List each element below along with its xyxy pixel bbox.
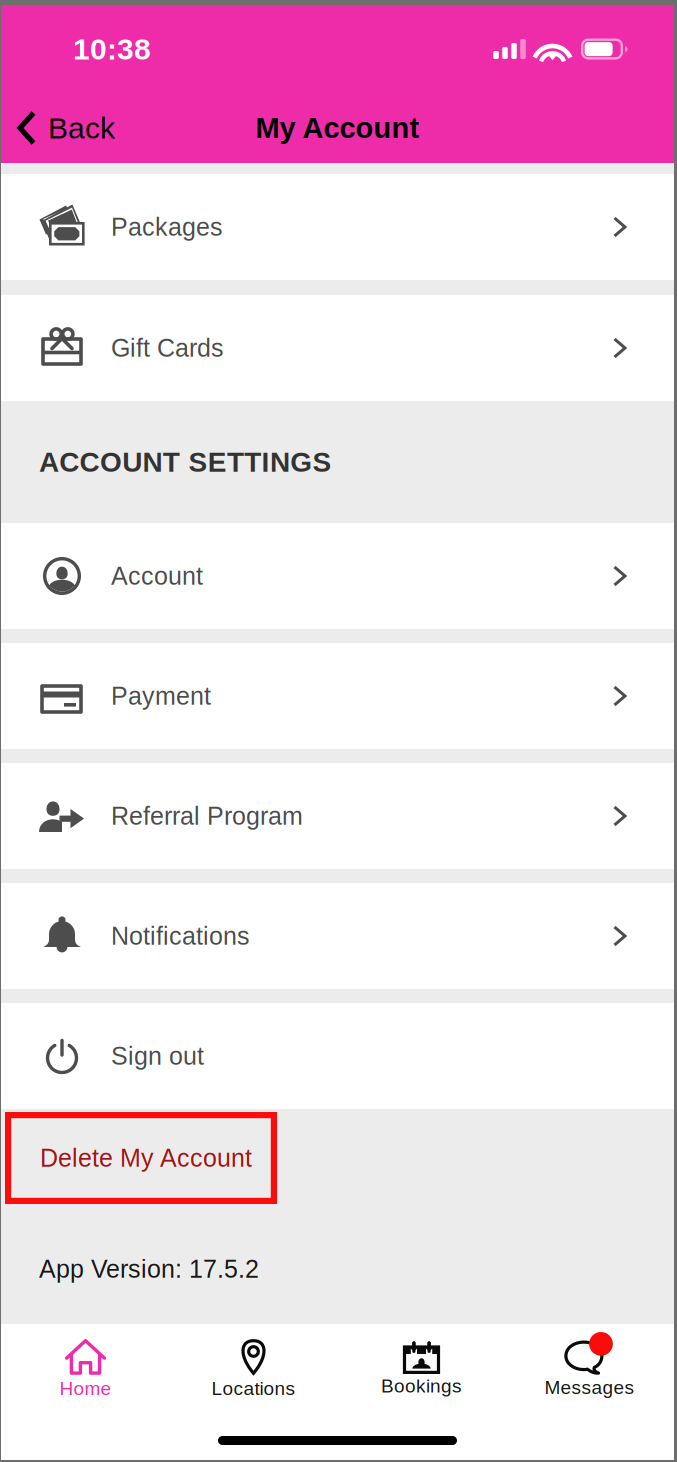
button[interactable]: Packages [1,174,674,280]
button[interactable]: Home [1,1329,169,1409]
button[interactable]: Notifications [1,883,674,989]
button[interactable]: Delete My Account [5,1112,277,1204]
button[interactable]: Sign out [1,1003,674,1109]
staticText: 10:38 [73,32,151,66]
staticText: Account [111,562,203,590]
staticText: App Version: 17.5.2 [39,1255,259,1283]
button[interactable]: Gift Cards [1,295,674,401]
staticText: Back [48,111,115,145]
staticText: Locations [211,1378,295,1399]
staticText: Home [59,1378,111,1399]
staticText: Delete My Account [40,1144,252,1172]
staticText: Bookings [381,1375,462,1397]
staticText: My Account [255,112,419,144]
staticText: Messages [544,1377,634,1398]
button[interactable]: Referral Program [1,763,674,869]
staticText: Packages [111,213,223,241]
button[interactable]: Bookings [337,1329,505,1409]
button[interactable]: Locations [169,1329,337,1409]
staticText: Sign out [111,1042,204,1070]
button[interactable]: Back [1,93,115,163]
staticText: Payment [111,682,211,710]
button[interactable]: Payment [1,643,674,749]
staticText: ACCOUNT SETTINGS [39,446,331,478]
staticText: Gift Cards [111,334,224,362]
button[interactable]: Account [1,523,674,629]
staticText: Referral Program [111,802,303,830]
staticText: Notifications [111,922,250,950]
button[interactable]: Messages [505,1329,673,1409]
